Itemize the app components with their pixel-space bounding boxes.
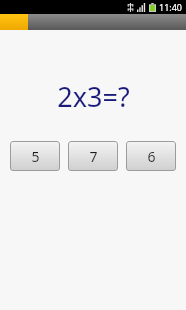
other: Battery (149, 3, 156, 12)
other: Notification (127, 3, 134, 12)
other: Signal strength (137, 3, 146, 12)
staticText: 6 (147, 147, 156, 166)
staticText: 7 (89, 147, 98, 166)
staticText: 11:40 (159, 1, 183, 13)
button[interactable]: 5 (10, 141, 60, 171)
staticText: 2x3=? (57, 78, 130, 115)
button[interactable]: 7 (68, 141, 118, 171)
staticText: 5 (31, 147, 40, 166)
button[interactable]: 6 (126, 141, 176, 171)
